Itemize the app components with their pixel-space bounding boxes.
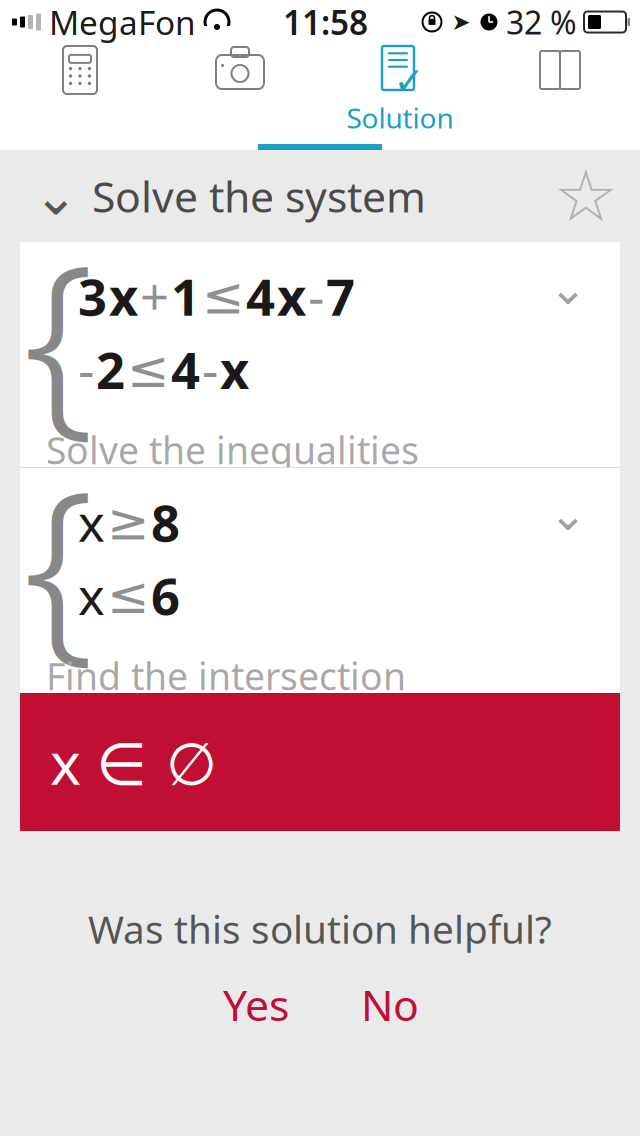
staticText: 4 bbox=[171, 336, 200, 403]
staticText: x bbox=[277, 262, 306, 330]
staticText: 11:58 bbox=[283, 0, 368, 44]
staticText: 1 bbox=[171, 262, 200, 330]
staticText: x ∈ ∅ bbox=[50, 723, 217, 801]
staticText: { bbox=[23, 426, 95, 691]
staticText: - bbox=[202, 336, 218, 403]
staticText: ➤ bbox=[451, 9, 470, 35]
staticText: Solve the inequalities bbox=[46, 425, 419, 475]
staticText: - bbox=[308, 262, 324, 330]
button[interactable]: Camera bbox=[160, 44, 320, 144]
button[interactable]: { bbox=[20, 468, 620, 693]
staticText: { bbox=[23, 200, 95, 465]
staticText: MegaFon bbox=[49, 0, 196, 44]
button[interactable]: No bbox=[353, 976, 427, 1032]
staticText: - bbox=[78, 336, 94, 403]
staticText: 8 bbox=[151, 488, 180, 556]
staticText: 6 bbox=[151, 562, 180, 629]
button[interactable]: Calculator bbox=[0, 44, 160, 144]
staticText: ≤ bbox=[127, 341, 169, 398]
staticText: ✓ bbox=[393, 60, 424, 102]
staticText: 4 bbox=[246, 262, 275, 330]
staticText: x bbox=[220, 336, 249, 403]
button[interactable]: ⌄ bbox=[0, 150, 426, 242]
staticText: x bbox=[78, 562, 105, 629]
staticText: No bbox=[361, 976, 419, 1033]
staticText: x bbox=[78, 488, 105, 556]
button[interactable]: ✓ bbox=[320, 44, 480, 144]
staticText: 7 bbox=[326, 262, 355, 330]
button[interactable]: Yes bbox=[213, 976, 299, 1032]
staticText: Solve the system bbox=[92, 168, 426, 224]
staticText: ≤ bbox=[107, 567, 149, 624]
staticText: Yes bbox=[223, 976, 289, 1033]
staticText: ≥ bbox=[107, 493, 149, 551]
button[interactable]: Favorite bbox=[546, 150, 626, 242]
staticText: 2 bbox=[96, 336, 125, 403]
staticText: + bbox=[140, 262, 169, 330]
staticText: ⌄ bbox=[549, 489, 587, 540]
staticText: Was this solution helpful? bbox=[88, 903, 552, 954]
staticText: ☆ bbox=[553, 155, 618, 237]
staticText: 32 % bbox=[506, 1, 577, 43]
button[interactable]: x ∈ ∅ bbox=[20, 693, 620, 831]
button[interactable]: { bbox=[20, 242, 620, 467]
staticText: Solution bbox=[346, 99, 453, 136]
staticText: 3 bbox=[78, 262, 107, 330]
staticText: Find the intersection bbox=[46, 651, 406, 701]
staticText: x bbox=[109, 262, 138, 330]
staticText: ≤ bbox=[202, 267, 244, 325]
staticText: ⌄ bbox=[33, 166, 78, 226]
button[interactable]: Textbook bbox=[480, 44, 640, 144]
staticText: ⌄ bbox=[549, 263, 587, 314]
